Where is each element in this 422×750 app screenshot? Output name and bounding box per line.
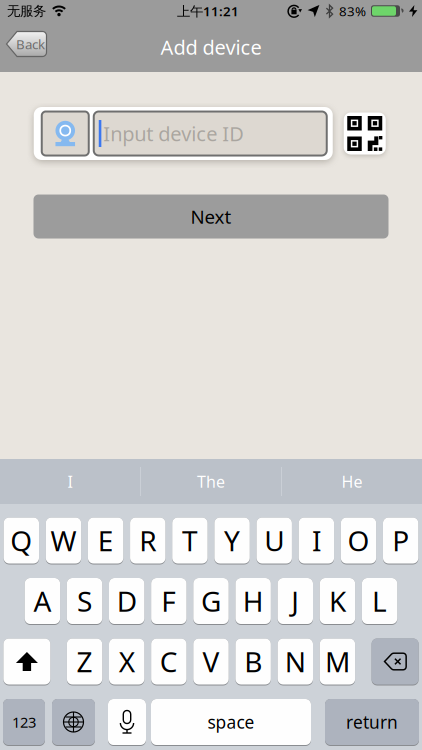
staticText: Back (16, 35, 45, 53)
button[interactable]: I (0, 459, 140, 504)
staticText: The (197, 471, 225, 492)
staticText: B (244, 643, 262, 680)
button[interactable]: S (67, 578, 102, 625)
button[interactable]: V (193, 638, 229, 685)
button[interactable]: X (109, 638, 144, 685)
staticText: Y (224, 522, 240, 559)
button[interactable]: F (151, 578, 187, 625)
button[interactable]: Q (4, 517, 39, 564)
staticText: return (346, 710, 398, 733)
button[interactable]: Shift (3, 638, 50, 685)
staticText: E (98, 522, 114, 559)
staticText: Add device (160, 34, 261, 60)
staticText: O (347, 522, 369, 559)
button[interactable]: Next (33, 194, 388, 238)
staticText: T (182, 522, 198, 559)
staticText: S (77, 582, 92, 620)
button[interactable]: L (362, 578, 397, 625)
staticText: I (67, 471, 72, 492)
staticText: R (139, 522, 156, 559)
staticText: I (312, 522, 321, 559)
button[interactable]: K (320, 578, 355, 625)
button[interactable]: Scan QR code (344, 112, 386, 154)
staticText: C (160, 643, 178, 680)
button[interactable]: U (256, 517, 292, 564)
button[interactable]: B (235, 638, 271, 685)
button[interactable]: return (325, 699, 419, 746)
button[interactable]: He (282, 459, 422, 504)
button[interactable]: 123 (3, 699, 45, 746)
button[interactable]: G (193, 578, 229, 625)
staticText: H (243, 582, 264, 620)
button[interactable]: D (109, 578, 144, 625)
staticText: Input device ID (103, 120, 244, 147)
staticText: 123 (12, 712, 36, 732)
button[interactable]: I (299, 517, 334, 564)
staticText: P (392, 522, 409, 559)
button[interactable]: O (341, 517, 376, 564)
button[interactable]: M (320, 638, 355, 685)
staticText: M (325, 643, 350, 680)
button[interactable]: Back (6, 31, 47, 57)
staticText: G (201, 582, 221, 620)
button[interactable]: Input device ID (94, 111, 327, 155)
button[interactable]: J (278, 578, 313, 625)
staticText: U (264, 522, 284, 559)
staticText: D (117, 582, 137, 620)
button[interactable]: The (141, 459, 281, 504)
button[interactable]: E (88, 517, 123, 564)
button[interactable]: C (151, 638, 186, 685)
staticText: space (207, 710, 254, 733)
staticText: He (341, 471, 362, 492)
button[interactable]: Delete (372, 638, 419, 685)
staticText: 83% (339, 2, 366, 20)
button[interactable]: N (278, 638, 313, 685)
staticText: 无服务 (7, 3, 46, 19)
button[interactable]: T (172, 517, 208, 564)
button[interactable]: Dictation (108, 699, 146, 746)
staticText: V (202, 643, 219, 680)
staticText: Z (76, 643, 92, 680)
staticText: K (329, 582, 346, 620)
button[interactable]: P (383, 517, 418, 564)
button[interactable]: Y (214, 517, 250, 564)
staticText: X (119, 643, 135, 680)
staticText: L (372, 582, 387, 620)
staticText: J (291, 582, 299, 620)
staticText: 上午11:21 (177, 2, 239, 20)
button[interactable]: Next keyboard (52, 699, 95, 746)
staticText: A (33, 582, 51, 620)
button[interactable]: R (130, 517, 165, 564)
button[interactable]: space (151, 699, 311, 746)
staticText: F (161, 582, 176, 620)
staticText: Q (10, 522, 32, 559)
button[interactable]: W (46, 517, 81, 564)
button[interactable]: Z (67, 638, 102, 685)
staticText: W (50, 522, 76, 559)
staticText: N (285, 643, 306, 680)
staticText: Next (190, 204, 231, 229)
button[interactable]: H (235, 578, 271, 625)
button[interactable]: A (25, 578, 60, 625)
